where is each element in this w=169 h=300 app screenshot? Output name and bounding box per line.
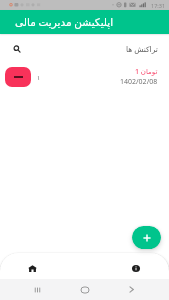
button[interactable]: Home bbox=[23, 259, 41, 277]
staticText: 1402/02/08 bbox=[120, 77, 158, 87]
button[interactable]: About bbox=[127, 259, 145, 277]
button[interactable]: Back bbox=[121, 279, 142, 300]
staticText: ۱ bbox=[37, 74, 41, 81]
button[interactable]: Search bbox=[9, 41, 25, 57]
staticText: 1 تومان bbox=[135, 67, 158, 77]
button[interactable]: Recents bbox=[27, 279, 48, 300]
staticText: اپلیکیشن مدیریت مالی bbox=[15, 15, 114, 29]
button[interactable]: Home bbox=[74, 279, 95, 300]
button[interactable]: ۱ bbox=[0, 61, 169, 93]
staticText: تراکنش ها bbox=[126, 44, 158, 54]
staticText: 17:31 bbox=[151, 2, 166, 9]
button[interactable]: Add transaction bbox=[132, 226, 161, 249]
